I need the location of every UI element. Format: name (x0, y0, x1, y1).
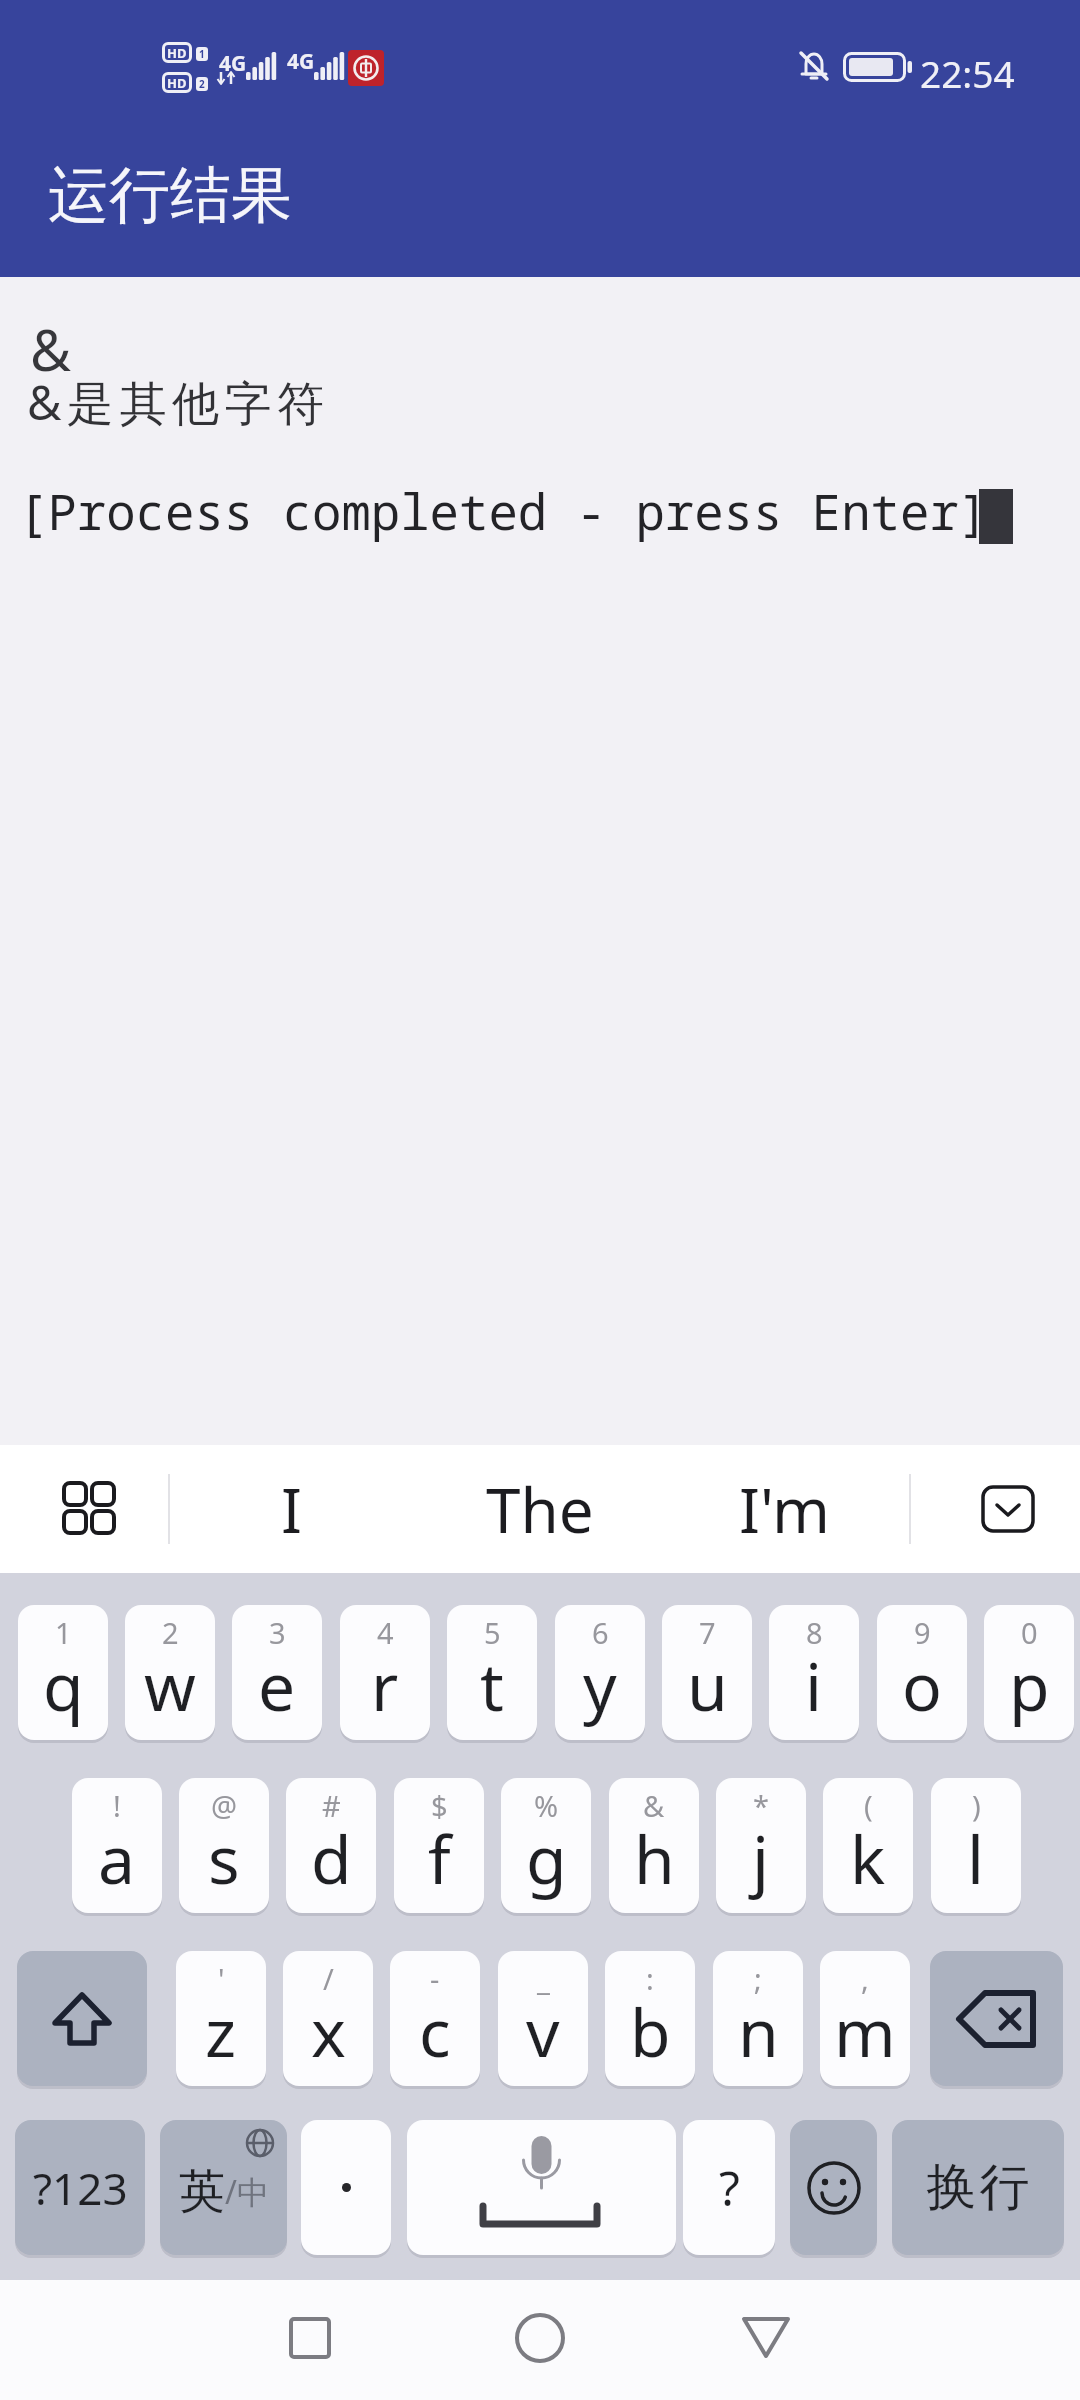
button[interactable] (930, 1951, 1063, 2086)
staticText: 1 (55, 1613, 72, 1652)
staticText: & (643, 1786, 665, 1825)
staticText: 4G (219, 49, 247, 78)
button[interactable]: * (716, 1778, 806, 1913)
staticText: 2 (162, 1613, 179, 1652)
staticText: 0 (1021, 1613, 1038, 1652)
staticText: @ (211, 1786, 238, 1825)
button[interactable]: 5 (447, 1605, 537, 1740)
staticText: The (486, 1467, 594, 1551)
staticText: 9 (914, 1613, 931, 1652)
staticText: 英 (179, 2163, 225, 2221)
staticText: ; (754, 1959, 762, 1998)
button[interactable] (790, 2120, 877, 2255)
staticText: & (30, 311, 71, 387)
staticText: # (322, 1786, 341, 1825)
button[interactable]: 换行 (892, 2120, 1064, 2255)
staticText: m (834, 1986, 896, 2076)
button[interactable]: ) (931, 1778, 1021, 1913)
button[interactable]: I (210, 1462, 374, 1556)
staticText: u (687, 1640, 728, 1730)
button[interactable]: 4 (340, 1605, 430, 1740)
staticText: 5 (484, 1613, 501, 1652)
button[interactable]: 6 (555, 1605, 645, 1740)
button[interactable] (725, 2298, 807, 2378)
staticText: w (144, 1640, 196, 1730)
staticText: ( (864, 1786, 873, 1825)
button[interactable]: 2 (125, 1605, 215, 1740)
button[interactable]: 英 (160, 2120, 287, 2255)
button[interactable]: : (605, 1951, 695, 2086)
staticText: ! (113, 1786, 121, 1825)
staticText: ? (719, 2155, 740, 2220)
staticText: v (526, 1986, 560, 2076)
staticText: e (258, 1640, 296, 1730)
staticText: q (43, 1640, 84, 1730)
button[interactable] (52, 1471, 128, 1547)
button[interactable]: @ (179, 1778, 269, 1913)
button[interactable] (301, 2120, 391, 2255)
staticText: x (311, 1986, 346, 2076)
button[interactable]: 8 (769, 1605, 859, 1740)
staticText: d (311, 1813, 352, 1903)
staticText: r (371, 1640, 399, 1730)
button[interactable]: ( (823, 1778, 913, 1913)
staticText: 4G (287, 47, 315, 76)
button[interactable]: 1 (18, 1605, 108, 1740)
button[interactable]: $ (394, 1778, 484, 1913)
staticText: z (205, 1986, 237, 2076)
staticText: : (646, 1959, 654, 1998)
staticText: ) (972, 1786, 981, 1825)
staticText: a (98, 1813, 136, 1903)
staticText: / (323, 1959, 334, 1998)
button[interactable]: # (286, 1778, 376, 1913)
staticText: % (534, 1786, 559, 1825)
staticText: y (583, 1640, 617, 1730)
staticText: 2 (199, 77, 205, 91)
button[interactable]: / (283, 1951, 373, 2086)
button[interactable]: The (458, 1462, 622, 1556)
staticText: o (902, 1640, 942, 1730)
staticText: I'm (739, 1467, 831, 1551)
staticText: l (967, 1813, 985, 1903)
button[interactable]: - (390, 1951, 480, 2086)
button[interactable]: ?123 (15, 2120, 145, 2255)
button[interactable]: 0 (984, 1605, 1074, 1740)
staticText: p (1009, 1640, 1050, 1730)
staticText: 4 (377, 1613, 394, 1652)
button[interactable]: 3 (232, 1605, 322, 1740)
staticText: 8 (806, 1613, 823, 1652)
staticText: t (480, 1640, 504, 1730)
staticText: HD (167, 74, 187, 92)
button[interactable]: 7 (662, 1605, 752, 1740)
button[interactable]: , (820, 1951, 910, 2086)
staticText: I (281, 1467, 303, 1551)
button[interactable]: % (501, 1778, 591, 1913)
button[interactable]: _ (498, 1951, 588, 2086)
staticText: 1 (199, 47, 205, 61)
button[interactable]: ? (683, 2120, 775, 2255)
button[interactable]: ' (176, 1951, 266, 2086)
staticText: _ (537, 1959, 550, 1998)
staticText: f (428, 1813, 451, 1903)
button[interactable] (407, 2120, 676, 2255)
staticText: s (208, 1813, 240, 1903)
staticText: $ (431, 1786, 448, 1825)
staticText: h (634, 1813, 675, 1903)
staticText: HD (167, 44, 187, 62)
staticText: 6 (592, 1613, 609, 1652)
button[interactable]: 9 (877, 1605, 967, 1740)
button[interactable] (269, 2298, 351, 2378)
button[interactable]: ! (72, 1778, 162, 1913)
staticText: - (430, 1959, 440, 1998)
button[interactable]: I'm (703, 1462, 867, 1556)
staticText: 运行结果 (48, 157, 292, 234)
button[interactable]: & (609, 1778, 699, 1913)
button[interactable] (17, 1951, 147, 2086)
staticText: ' (218, 1959, 225, 1998)
staticText: g (526, 1813, 567, 1903)
staticText: , (861, 1959, 869, 1998)
button[interactable] (499, 2298, 581, 2378)
button[interactable] (962, 1466, 1054, 1552)
button[interactable]: ; (713, 1951, 803, 2086)
staticText: j (752, 1813, 770, 1903)
